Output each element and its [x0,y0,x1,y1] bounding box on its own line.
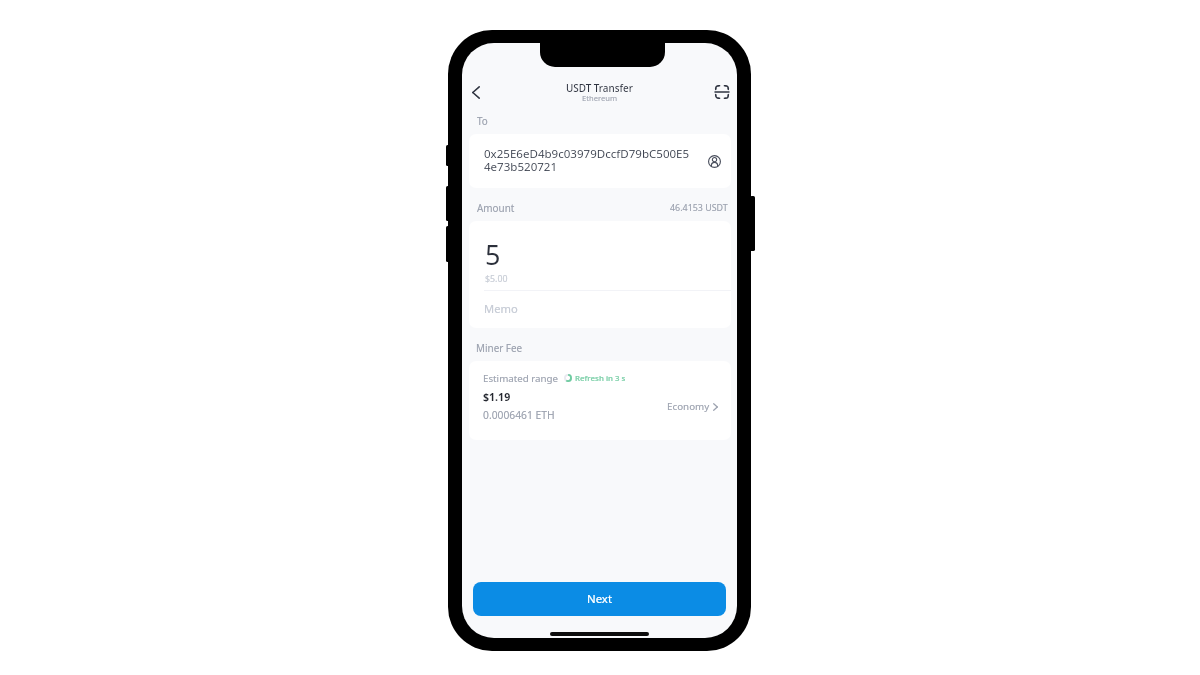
staticText: Refresh in 3 s [575,373,626,384]
button[interactable]: Estimated range [469,361,731,440]
button[interactable] [469,291,731,328]
button[interactable]: Back [462,77,491,107]
staticText: Amount [477,201,515,214]
staticText: Next [587,591,612,607]
staticText: Estimated range [483,372,559,385]
staticText: Miner Fee [476,341,523,354]
staticText: 0.0006461 ETH [483,408,555,422]
staticText: 0x25E6eD4b9c03979DccfD79bC500E5 [484,146,690,162]
button[interactable]: Choose contact [704,151,724,171]
staticText: Ethereum [582,93,617,103]
staticText: $1.19 [483,390,511,404]
button[interactable]: Economy [667,396,718,417]
staticText: USDT Transfer [566,81,633,94]
staticText: Memo [484,301,518,316]
staticText: 4e73b520721 [484,159,558,175]
staticText: To [477,114,488,127]
button[interactable]: 0x25E6eD4b9c03979DccfD79bC500E5 [469,134,731,188]
staticText: 46.4153 USDT [670,201,728,213]
staticText: Economy [667,400,710,413]
button[interactable]: Next [473,582,726,616]
button[interactable]: Scan QR code [707,77,737,107]
staticText: $5.00 [485,273,508,285]
staticText: 5 [485,236,501,273]
